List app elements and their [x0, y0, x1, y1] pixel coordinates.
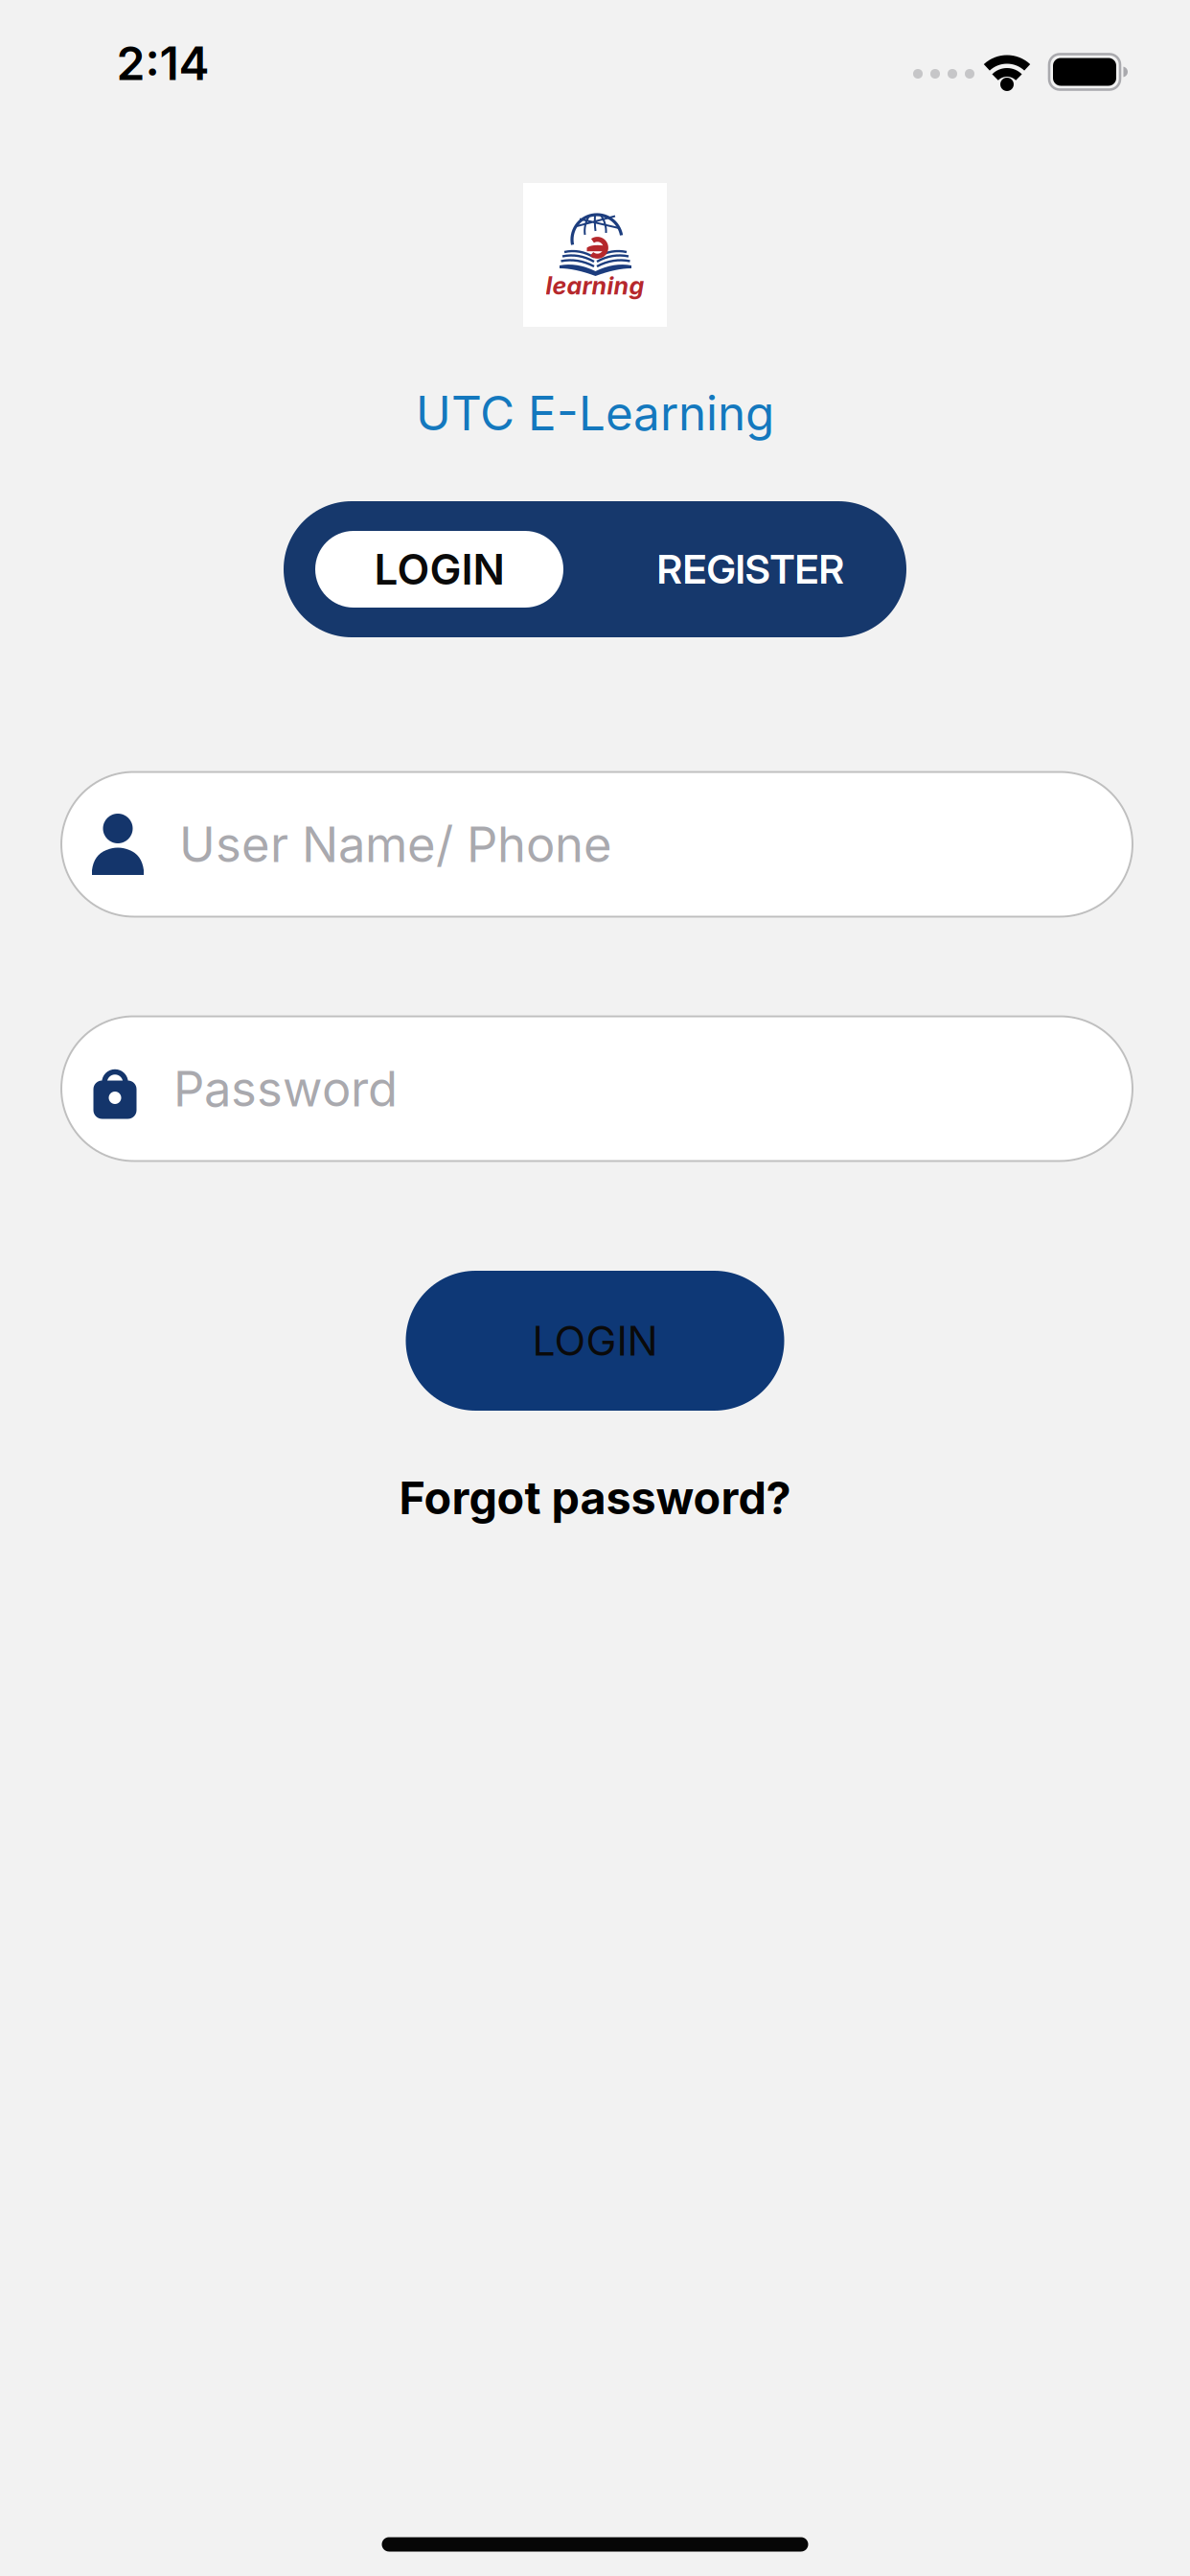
button[interactable]: REGISTER — [595, 501, 906, 637]
button[interactable]: LOGIN — [406, 1271, 784, 1411]
button[interactable]: Forgot password? — [399, 1472, 791, 1524]
staticText: 2:14 — [116, 36, 209, 90]
staticText: UTC E-Learning — [416, 385, 774, 441]
staticText: Forgot password? — [399, 1472, 791, 1524]
staticText: LOGIN — [532, 1317, 658, 1365]
button[interactable]: User Name/ Phone — [60, 771, 1133, 918]
staticText: User Name/ Phone — [179, 816, 612, 873]
button[interactable]: LOGIN — [284, 501, 595, 637]
staticText: learning — [546, 271, 644, 300]
button[interactable]: Password — [60, 1015, 1133, 1162]
staticText: Password — [173, 1060, 398, 1117]
staticText: REGISTER — [657, 546, 845, 593]
staticText: LOGIN — [374, 544, 504, 594]
